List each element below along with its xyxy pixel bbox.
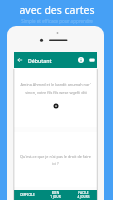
- button[interactable]: BIEN 1 JOUR: [41, 190, 69, 200]
- staticText: Amina Ahmed et le bandit anumah nar': [20, 82, 91, 87]
- button[interactable]: FACILE 4 JOURS: [69, 190, 97, 200]
- button[interactable]: Bookmark: [86, 52, 97, 68]
- staticText: sinon, votre fils fils wese wgefii diti: [25, 90, 87, 95]
- staticText: DIFFICILE: [20, 193, 35, 197]
- staticText: avec des cartes: [19, 3, 95, 17]
- staticText: BIEN 1 JOUR: [50, 191, 61, 199]
- button[interactable]: Back: [15, 52, 24, 68]
- button[interactable]: Information: [76, 52, 86, 68]
- staticText: Simple et efficace pour apprendre: [21, 18, 93, 24]
- staticText: ici ?: [52, 161, 59, 166]
- staticText: FACILE 4 JOURS: [77, 191, 90, 199]
- staticText: Qu'est-ce que je n'ai pas le droit de fa…: [20, 154, 91, 159]
- button[interactable]: DIFFICILE: [14, 190, 41, 200]
- staticText: Débutant: [28, 57, 52, 64]
